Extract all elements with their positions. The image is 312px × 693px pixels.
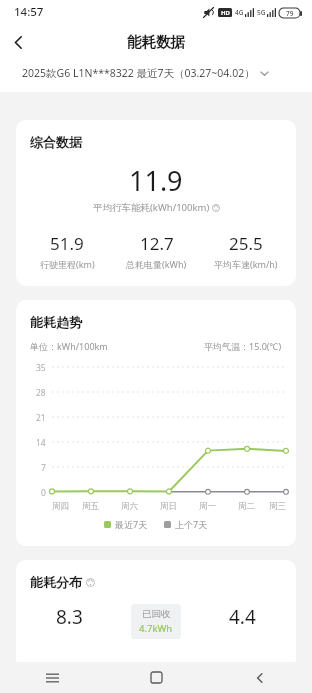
staticText: 周五: [82, 501, 99, 512]
button[interactable]: 上个7天: [164, 518, 208, 530]
staticText: 总耗电量(kWh): [126, 258, 187, 270]
staticText: 平均气温：15.0(℃): [204, 340, 282, 352]
staticText: 7: [41, 462, 46, 472]
staticText: 25.5: [229, 232, 263, 255]
staticText: 2025款G6 L1N***8322 最近7天（03.27~04.02）: [22, 66, 255, 80]
staticText: 平均行车能耗(kWh/100km): [93, 201, 210, 214]
staticText: 35: [36, 362, 46, 372]
staticText: 能耗数据: [127, 33, 185, 51]
staticText: 能耗分布: [30, 574, 82, 590]
staticText: 综合数据: [30, 134, 82, 150]
staticText: 能耗趋势: [30, 314, 82, 330]
staticText: 单位：kWh/100km: [30, 340, 108, 352]
button[interactable]: 最近7天: [104, 518, 148, 530]
staticText: 12.7: [140, 232, 174, 255]
staticText: 4G: [235, 8, 244, 17]
staticText: 14:57: [14, 4, 44, 20]
staticText: 最近7天: [115, 518, 148, 530]
staticText: 4.4: [229, 604, 256, 630]
staticText: 行驶里程(km): [40, 258, 95, 270]
staticText: 周六: [121, 501, 138, 512]
staticText: 4.7kWh: [139, 622, 173, 635]
staticText: 0: [41, 487, 46, 497]
staticText: 21: [36, 412, 46, 422]
staticText: 8.3: [56, 604, 83, 630]
staticText: 周日: [160, 501, 177, 512]
staticText: 已回收: [142, 608, 171, 620]
staticText: 14: [36, 437, 46, 447]
button[interactable]: Back: [0, 24, 36, 60]
button[interactable]: 2025款G6 L1N***8322 最近7天（03.27~04.02）: [0, 60, 312, 86]
button[interactable]: Home: [104, 662, 208, 693]
staticText: 周一: [199, 501, 216, 512]
staticText: 周三: [269, 501, 286, 512]
staticText: 51.9: [50, 232, 84, 255]
staticText: 上个7天: [175, 518, 208, 530]
staticText: 79: [286, 9, 294, 18]
staticText: 周二: [238, 501, 255, 512]
staticText: HD: [221, 9, 230, 17]
staticText: 28: [36, 387, 46, 397]
staticText: 周四: [52, 501, 69, 512]
staticText: 平均车速(km/h): [214, 258, 278, 270]
button[interactable]: Recent apps: [0, 662, 104, 693]
staticText: 5G: [257, 8, 266, 17]
button[interactable]: Back: [208, 662, 312, 693]
staticText: 11.9: [129, 162, 183, 199]
